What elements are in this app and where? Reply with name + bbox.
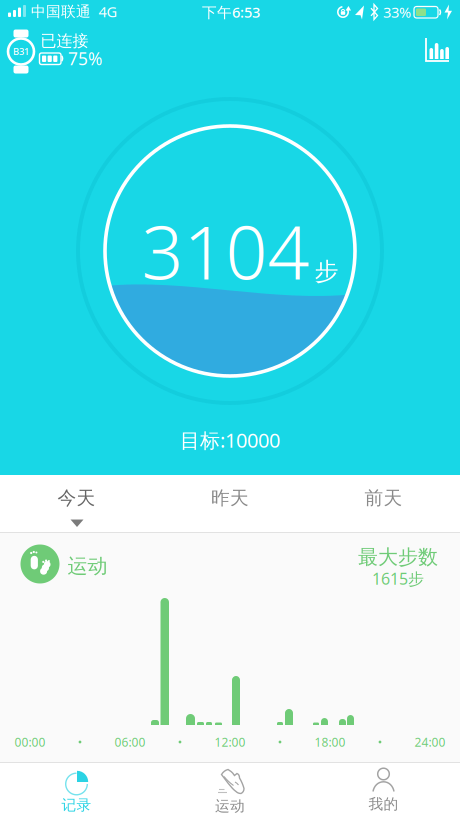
staticText: 00:00 (14, 734, 45, 750)
staticText: 12:00 (214, 734, 245, 750)
staticText: 18:00 (314, 734, 345, 750)
staticText: 前天 (364, 486, 402, 509)
staticText: 4G (98, 2, 117, 21)
staticText: 3104 (141, 202, 309, 300)
staticText: 06:00 (114, 734, 145, 750)
staticText: 已连接 (40, 31, 88, 51)
button[interactable]: 今天 (0, 473, 153, 523)
button[interactable]: 前天 (307, 473, 460, 523)
staticText: 1615步 (372, 568, 424, 589)
staticText: 步 (314, 257, 338, 286)
button[interactable]: 我的 (307, 763, 460, 817)
staticText: 下午6:53 (202, 2, 260, 22)
staticText: 33% (383, 2, 411, 22)
button[interactable]: 昨天 (153, 473, 307, 523)
button[interactable]: 记录 (0, 763, 153, 817)
staticText: 目标:10000 (180, 427, 280, 453)
staticText: 我的 (368, 795, 398, 813)
staticText: 中国联通 (31, 2, 91, 20)
staticText: 75% (68, 47, 102, 70)
staticText: B31 (13, 45, 29, 58)
button[interactable]: 运动 (153, 763, 307, 817)
staticText: 运动 (215, 797, 245, 815)
staticText: 最大步数 (358, 545, 438, 569)
staticText: 昨天 (211, 486, 249, 509)
staticText: 24:00 (414, 734, 445, 750)
staticText: 运动 (67, 554, 107, 578)
staticText: 今天 (57, 486, 95, 509)
button[interactable]: Statistics (424, 38, 450, 62)
staticText: 记录 (61, 796, 91, 814)
